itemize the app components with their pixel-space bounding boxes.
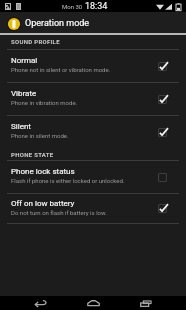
staticText: PHONE STATE [11,151,54,158]
staticText: Off on low battery [11,199,75,208]
button[interactable]: Normal [0,50,186,83]
button[interactable]: Back [13,296,67,310]
button[interactable]: Toggle [155,125,169,139]
staticText: Do not turn on flash if battery is low. [11,209,107,216]
staticText: Mon 30 [62,3,83,10]
button[interactable]: Home [67,296,120,310]
staticText: Phone in vibration mode. [11,99,78,106]
staticText: Silent [11,122,31,131]
button[interactable]: Off on low battery [0,194,186,224]
button[interactable]: Recent apps [119,296,173,310]
staticText: Phone not in silent or vibration mode. [11,66,111,73]
button[interactable]: Toggle [155,92,169,106]
button[interactable]: Toggle [155,201,169,215]
button[interactable]: Vibrate [0,83,186,116]
staticText: Phone in silent mode. [11,132,69,139]
button[interactable]: Operation mode [0,12,186,33]
staticText: Operation mode [25,18,90,29]
staticText: 18:34 [85,1,108,12]
staticText: Phone lock status [11,167,75,176]
button[interactable]: Toggle [155,59,169,73]
button[interactable]: Silent [0,116,186,149]
button[interactable]: Phone lock status [0,161,186,194]
button[interactable]: Toggle [155,170,169,184]
staticText: Vibrate [11,89,37,98]
staticText: Flash if phone is either locked or unloc… [11,177,125,184]
staticText: SOUND PROFILE [11,38,60,45]
staticText: Normal [11,56,38,65]
